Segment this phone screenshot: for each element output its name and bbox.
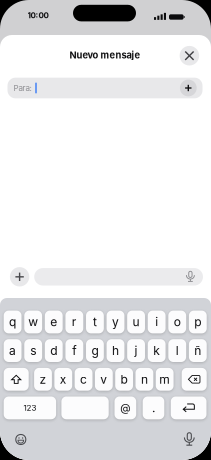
staticText: d [50,343,57,358]
staticText: f [72,343,76,358]
staticText: @ [120,402,130,414]
staticText: z [39,372,46,386]
button[interactable]: j [127,339,145,362]
button[interactable]: Borrar [182,368,207,391]
button[interactable]: x [54,368,72,391]
button[interactable]: c [75,368,92,391]
button[interactable]: e [45,311,63,333]
staticText: n [141,372,148,386]
staticText: 123 [23,403,36,413]
staticText: s [30,343,36,358]
button[interactable]: a [4,339,21,362]
button[interactable]: . [143,396,164,419]
staticText: w [28,315,38,329]
button[interactable]: p [189,311,207,333]
staticText: e [50,315,57,329]
staticText: y [112,315,119,329]
staticText: v [100,372,107,386]
staticText: g [91,343,98,358]
staticText: a [9,343,16,358]
button[interactable]: m [156,368,174,391]
button[interactable]: d [45,339,63,362]
staticText: l [176,343,179,358]
button[interactable]: ñ [189,339,207,362]
staticText: t [93,315,97,329]
button[interactable]: i [148,311,166,333]
staticText: 10:00 [27,11,48,20]
staticText: p [194,315,201,329]
staticText: m [159,372,170,386]
button[interactable]: s [24,339,42,362]
staticText: j [135,343,138,358]
button[interactable]: v [95,368,113,391]
staticText: . [152,401,155,415]
staticText: q [9,315,16,329]
button[interactable]: l [168,339,186,362]
button[interactable]: @ [114,396,136,419]
staticText: h [112,343,119,358]
button[interactable]: 123 [4,396,56,419]
staticText: c [80,372,87,386]
staticText: Para: [13,83,31,93]
button[interactable]: w [24,311,42,333]
button[interactable]: g [86,339,104,362]
button[interactable]: z [34,368,52,391]
staticText: o [174,315,181,329]
button[interactable]: Dictado [184,433,194,446]
button[interactable]: Intro [171,396,206,419]
button[interactable]: Añadir contacto [180,80,197,96]
button[interactable]: f [65,339,83,362]
button[interactable]: Emojis [15,434,26,445]
staticText: u [133,315,140,329]
staticText: i [155,315,158,329]
button[interactable]: Aplicaciones [10,267,29,286]
staticText: r [72,315,77,329]
button[interactable]: h [107,339,124,362]
staticText: ñ [194,343,201,358]
button[interactable]: k [148,339,166,362]
button[interactable]: t [86,311,104,333]
button[interactable]: o [168,311,186,333]
staticText: x [60,372,67,386]
staticText: k [153,343,160,358]
button[interactable]: b [115,368,133,391]
staticText: b [121,372,128,386]
button[interactable]: u [127,311,145,333]
button[interactable]: Cerrar [180,46,199,65]
button[interactable]: Mayúsculas [4,368,29,391]
button[interactable]: y [107,311,124,333]
staticText: Nuevo mensaje [69,49,140,60]
button[interactable]: n [135,368,153,391]
button[interactable]: r [65,311,83,333]
button[interactable]: q [4,311,21,333]
button[interactable]: Mensaje de texto [34,268,203,286]
button[interactable]: Espacio [61,396,109,419]
